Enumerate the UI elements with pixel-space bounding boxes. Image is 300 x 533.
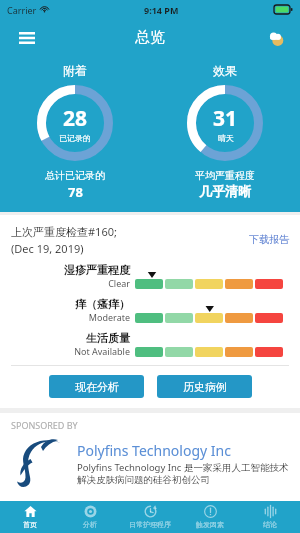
staticText: Clear xyxy=(108,277,130,289)
staticText: 已记录的 xyxy=(59,133,91,143)
staticText: 日常护理程序 xyxy=(129,520,171,529)
staticText: 平均严重程度 xyxy=(195,169,255,182)
staticText: 湿疹严重程度 xyxy=(64,263,130,277)
staticText: 首页 xyxy=(23,520,37,529)
staticText: 9:14 PM xyxy=(144,4,179,16)
button[interactable]: Polyfins Technology Inc xyxy=(9,432,291,494)
staticText: Carrier xyxy=(7,4,37,16)
staticText: 附着 xyxy=(63,63,87,78)
staticText: 几乎清晰 xyxy=(199,183,251,199)
button[interactable]: 首页 xyxy=(0,501,60,533)
button[interactable]: Weather xyxy=(261,24,289,52)
button[interactable]: 下载报告 xyxy=(249,233,289,246)
staticText: 总计已记录的 xyxy=(45,169,105,182)
button[interactable]: 分析 xyxy=(60,501,120,533)
staticText: SPONSORED BY xyxy=(11,419,78,431)
staticText: Moderate xyxy=(88,311,130,323)
button[interactable]: 日常护理程序 xyxy=(120,501,180,533)
staticText: Not Available xyxy=(74,345,130,357)
staticText: 下载报告 xyxy=(249,233,289,246)
staticText: 历史病例 xyxy=(183,380,227,394)
staticText: 总览 xyxy=(135,28,165,47)
staticText: 生活质量 xyxy=(86,331,130,345)
staticText: 78 xyxy=(68,183,83,201)
button[interactable]: 触发因素 xyxy=(180,501,240,533)
staticText: 痒（瘙痒） xyxy=(75,297,130,311)
staticText: 效果 xyxy=(213,63,237,78)
staticText: 晴天 xyxy=(218,133,234,143)
button[interactable]: 现在分析 xyxy=(49,375,144,398)
button[interactable]: Menu xyxy=(12,23,42,53)
staticText: 上次严重度检查#160; xyxy=(11,224,117,239)
staticText: 触发因素 xyxy=(196,520,224,529)
staticText: 28 xyxy=(63,104,88,133)
staticText: Polyfins Technology Inc xyxy=(77,441,231,460)
staticText: 现在分析 xyxy=(75,380,119,394)
staticText: 结论 xyxy=(263,520,277,529)
button[interactable]: 结论 xyxy=(240,501,300,533)
staticText: (Dec 19, 2019) xyxy=(11,241,84,256)
staticText: Polyfins Technology Inc 是一家采用人工智能技术解决皮肤病… xyxy=(77,461,291,485)
button[interactable]: 历史病例 xyxy=(157,375,252,398)
staticText: 分析 xyxy=(83,520,97,529)
staticText: 31 xyxy=(213,104,238,133)
